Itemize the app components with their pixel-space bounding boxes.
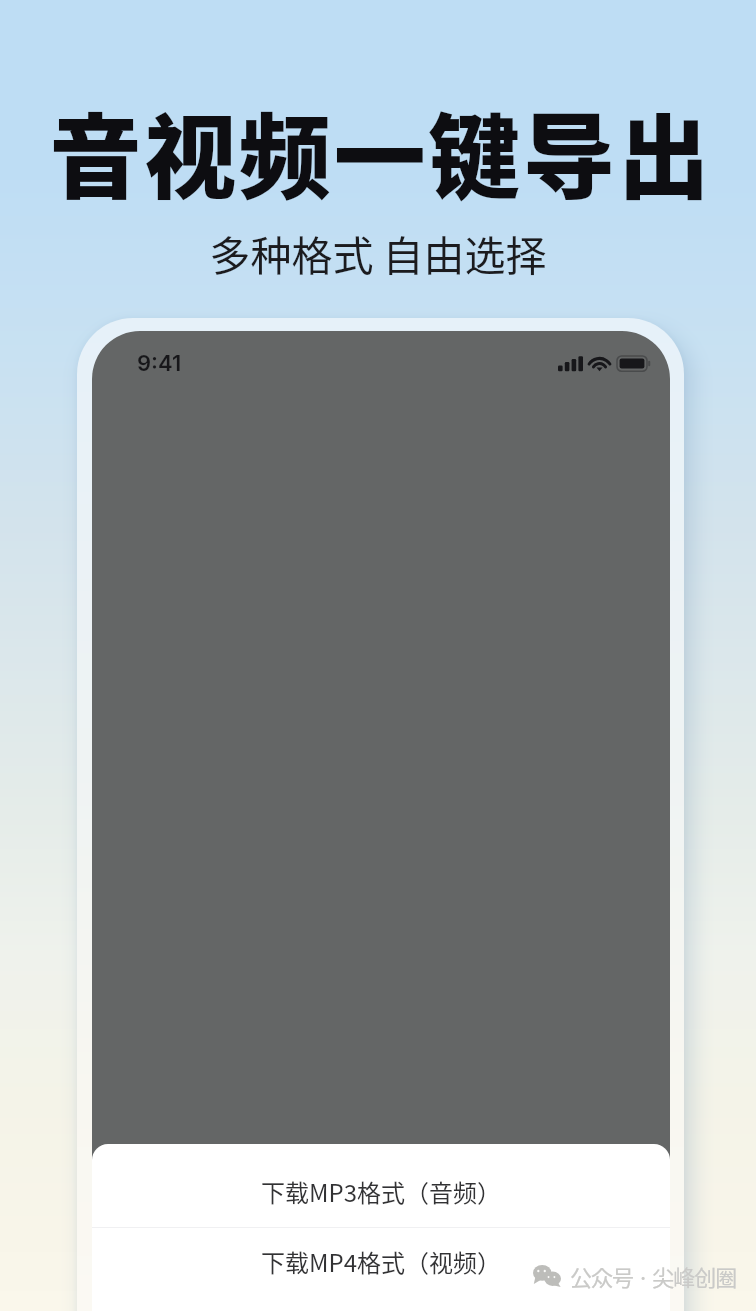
staticText: 9:41 bbox=[137, 350, 182, 377]
staticText: 多种格式 自由选择 bbox=[0, 223, 756, 282]
staticText: 下载MP4格式（视频） bbox=[261, 1244, 501, 1279]
staticText: 音视频一键导出 bbox=[3, 84, 756, 217]
button[interactable]: 下载MP4格式（视频） bbox=[92, 1228, 670, 1311]
other: Signal, Wi-Fi and battery status bbox=[558, 356, 658, 376]
staticText: 下载MP3格式（音频） bbox=[261, 1174, 501, 1209]
button[interactable]: 下载MP3格式（音频） bbox=[92, 1144, 670, 1227]
other: WeChat official account bbox=[533, 1265, 561, 1287]
staticText: 公众号 · 尖峰创圈 bbox=[570, 1260, 737, 1292]
